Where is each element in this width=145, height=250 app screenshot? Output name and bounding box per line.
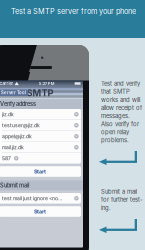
staticText: Server Tool [1, 90, 26, 95]
staticText: appel@jiz.dk [2, 133, 32, 139]
staticText: SMTP [26, 87, 53, 98]
button[interactable]: testuser@jiz.dk [0, 120, 81, 131]
staticText: jiz.dk [2, 111, 14, 117]
button[interactable]: 587 [0, 153, 81, 164]
staticText: 5:27 PM [39, 81, 55, 86]
staticText: Verify address [0, 101, 36, 107]
button[interactable]: Start [0, 206, 81, 217]
button[interactable]: Start [0, 166, 81, 177]
staticText: Start [34, 208, 46, 215]
button[interactable]: test mail just ignore <no… [0, 193, 81, 204]
staticText: 587 [2, 155, 11, 161]
button[interactable]: appel@jiz.dk [0, 131, 81, 142]
staticText: mail.jiz.dk [2, 144, 24, 150]
staticText: Submit mail [0, 182, 29, 189]
button[interactable]: jiz.dk [0, 109, 81, 120]
staticText: test mail just ignore <no… [2, 195, 62, 201]
staticText: Test and verify that SMTP works and will… [101, 80, 142, 144]
staticText: testuser@jiz.dk [2, 122, 40, 128]
button[interactable]: Server Tool [0, 89, 28, 96]
staticText: Test a SMTP server from your phone [11, 7, 136, 16]
staticText: Carrier [0, 81, 13, 86]
button[interactable]: mail.jiz.dk [0, 142, 81, 153]
staticText: Start [34, 168, 46, 175]
staticText: Submit a mail for further test- ing. [101, 188, 143, 211]
